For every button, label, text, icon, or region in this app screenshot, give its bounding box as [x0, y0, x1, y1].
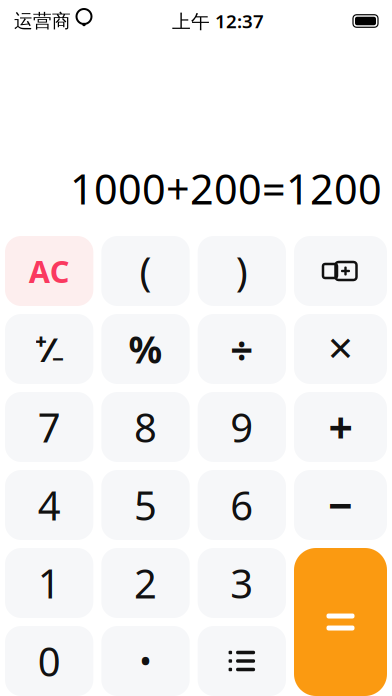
- button[interactable]: 2: [101, 548, 190, 618]
- staticText: 4: [38, 478, 61, 531]
- staticText: ÷: [230, 322, 253, 375]
- staticText: ✕: [326, 330, 354, 368]
- button[interactable]: •: [101, 626, 190, 696]
- staticText: 9: [230, 400, 253, 453]
- staticText: 5: [134, 478, 157, 531]
- staticText: 1: [38, 556, 61, 609]
- staticText: 运营商: [14, 9, 71, 32]
- staticText: 上午 12:37: [172, 9, 264, 33]
- button[interactable]: 3: [198, 548, 286, 618]
- staticText: +: [328, 399, 352, 455]
- button[interactable]: 0: [5, 626, 93, 696]
- button[interactable]: 1: [5, 548, 93, 618]
- staticText: ⁺⁄₋: [35, 326, 64, 372]
- staticText: 2: [134, 556, 157, 609]
- button[interactable]: ⁺⁄₋: [5, 314, 93, 384]
- staticText: 3: [230, 556, 253, 609]
- staticText: AC: [29, 251, 70, 291]
- staticText: 8: [134, 400, 157, 453]
- button[interactable]: (: [101, 236, 190, 306]
- staticText: ): [236, 244, 248, 297]
- button[interactable]: ✕: [294, 314, 387, 384]
- staticText: %: [128, 324, 162, 374]
- button[interactable]: −: [294, 470, 387, 540]
- staticText: −: [328, 477, 353, 533]
- button[interactable]: History: [198, 626, 286, 696]
- staticText: 7: [38, 400, 61, 453]
- button[interactable]: 4: [5, 470, 93, 540]
- button[interactable]: 6: [198, 470, 286, 540]
- button[interactable]: 5: [101, 470, 190, 540]
- button[interactable]: %: [101, 314, 190, 384]
- staticText: 0: [38, 634, 61, 687]
- button[interactable]: 8: [101, 392, 190, 462]
- button[interactable]: ÷: [198, 314, 286, 384]
- button[interactable]: 9: [198, 392, 286, 462]
- button[interactable]: ): [198, 236, 286, 306]
- staticText: •: [140, 643, 150, 679]
- staticText: (: [139, 244, 151, 297]
- button[interactable]: +: [294, 392, 387, 462]
- button[interactable]: Delete: [294, 236, 387, 306]
- button[interactable]: Equals: [294, 548, 387, 696]
- button[interactable]: AC: [5, 236, 93, 306]
- staticText: 1000+200=1200: [70, 161, 382, 216]
- button[interactable]: 7: [5, 392, 93, 462]
- staticText: 6: [230, 478, 253, 531]
